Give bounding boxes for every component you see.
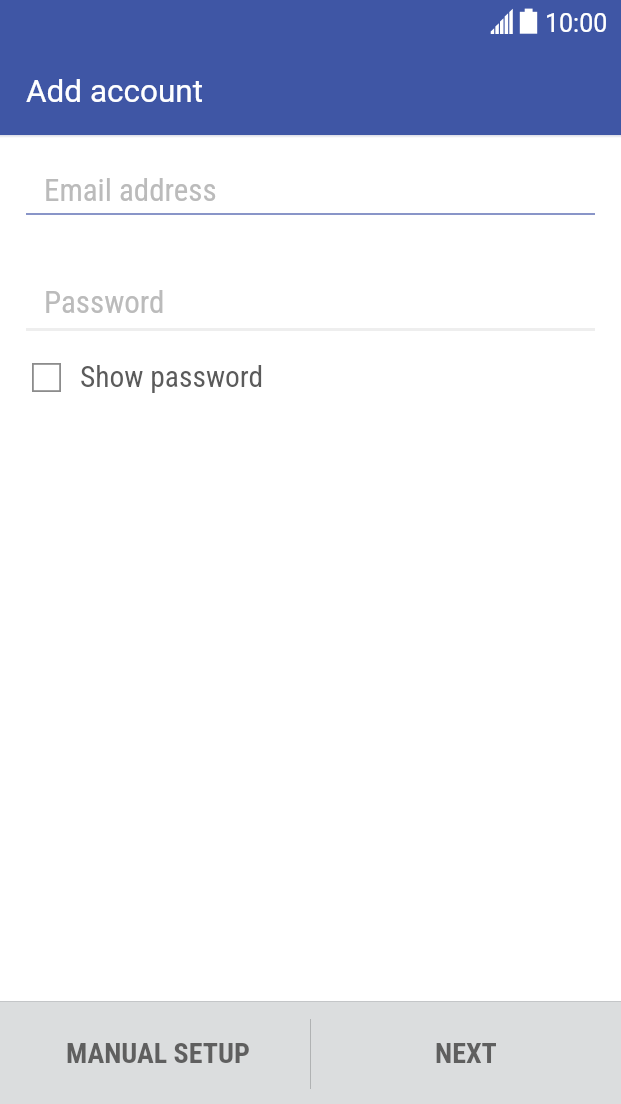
button[interactable]: MANUAL SETUP bbox=[0, 1002, 311, 1104]
staticText: NEXT bbox=[435, 1037, 497, 1070]
other: Battery bbox=[519, 8, 538, 34]
staticText: 10:00 bbox=[545, 9, 608, 38]
button[interactable]: Password bbox=[26, 272, 595, 330]
staticText: MANUAL SETUP bbox=[66, 1037, 250, 1070]
staticText: Email address bbox=[44, 172, 217, 208]
staticText: Add account bbox=[26, 73, 204, 110]
button[interactable]: NEXT bbox=[311, 1002, 621, 1104]
button[interactable]: Email address bbox=[26, 160, 595, 215]
button[interactable]: Show password bbox=[0, 351, 300, 403]
staticText: Show password bbox=[80, 360, 264, 395]
staticText: Password bbox=[44, 284, 165, 320]
other: Signal strength bbox=[490, 8, 514, 35]
